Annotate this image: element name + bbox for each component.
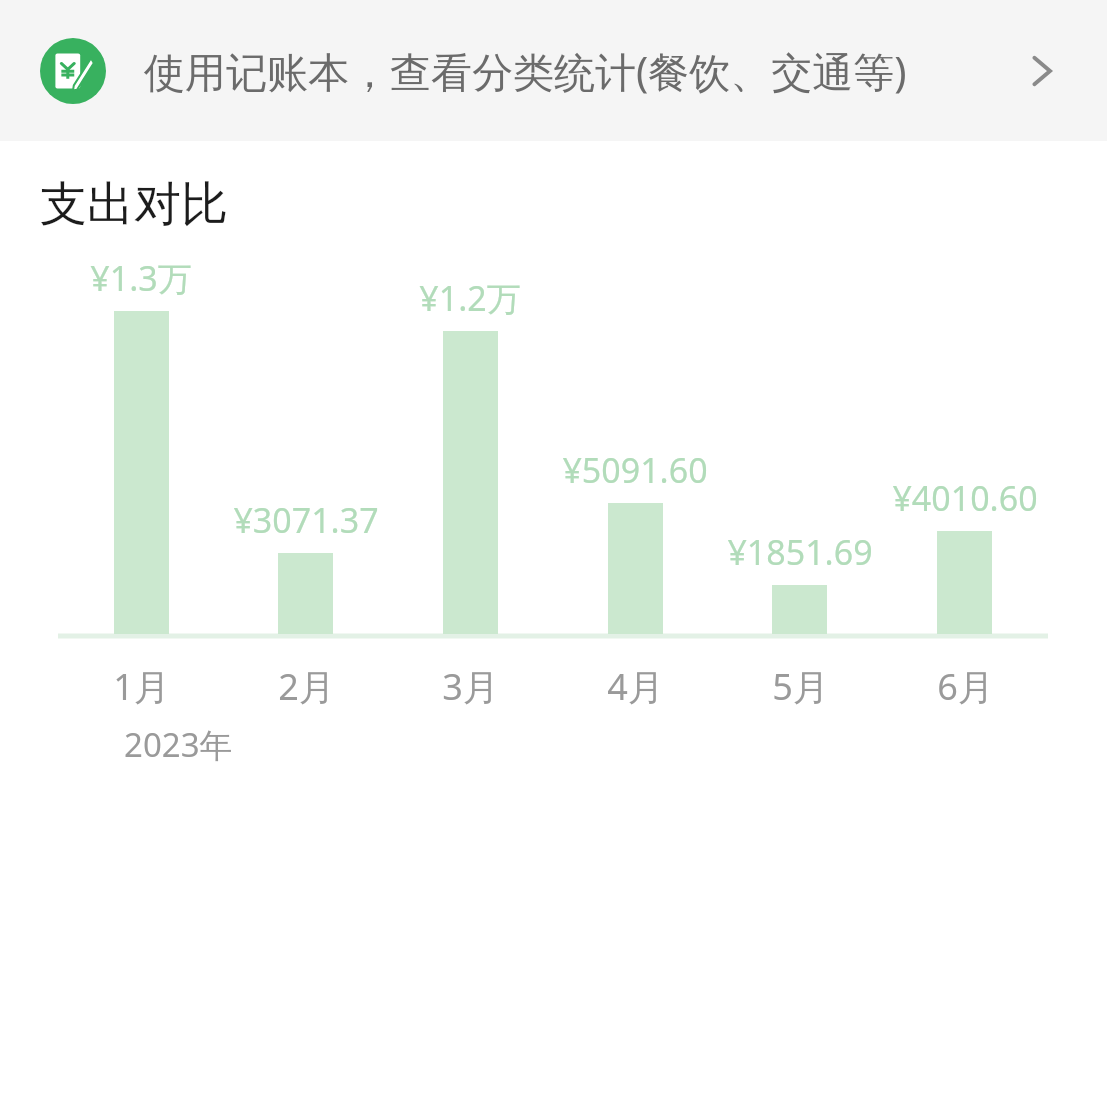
button[interactable]: 打开记账本 [1015, 45, 1067, 97]
button[interactable]: 使用记账本，查看分类统计(餐饮、交通等) [0, 0, 1107, 141]
staticText: 6月 [937, 662, 994, 711]
staticText: 使用记账本，查看分类统计(餐饮、交通等) [144, 43, 1015, 99]
staticText: 2023年 [124, 722, 233, 767]
staticText: ¥1851.69 [727, 529, 873, 575]
staticText: ¥1.3万 [90, 255, 192, 301]
staticText: 4月 [607, 662, 664, 711]
staticText: 1月 [113, 662, 170, 711]
staticText: 5月 [772, 662, 829, 711]
staticText: 支出对比 [40, 175, 228, 234]
staticText: ¥5091.60 [562, 447, 708, 493]
staticText: ¥4010.60 [892, 475, 1038, 521]
staticText: 2月 [278, 662, 335, 711]
staticText: ¥1.2万 [419, 275, 521, 321]
staticText: 3月 [442, 662, 499, 711]
staticText: ¥3071.37 [233, 497, 379, 543]
